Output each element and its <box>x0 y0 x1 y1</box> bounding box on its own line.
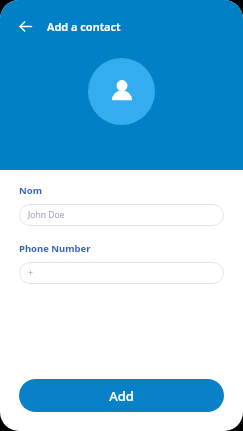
staticText: Nom <box>19 184 42 197</box>
staticText: + <box>28 267 33 279</box>
staticText: Add <box>109 387 134 405</box>
button[interactable]: Contact photo <box>88 58 155 125</box>
button[interactable]: Back <box>12 13 38 39</box>
staticText: John Doe <box>28 209 65 221</box>
button[interactable]: John Doe <box>19 204 224 226</box>
button[interactable]: + <box>19 262 224 284</box>
button[interactable]: Add <box>19 379 224 412</box>
staticText: Add a contact <box>47 19 121 34</box>
staticText: Phone Number <box>19 242 91 255</box>
